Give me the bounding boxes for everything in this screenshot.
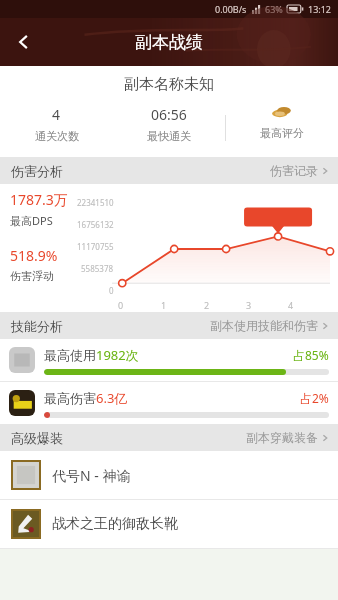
staticText: 0 [109,285,114,296]
staticText: 伤害记录 [270,163,318,178]
staticText: 副本使用技能和伤害 [210,318,318,333]
button[interactable]: 技能分析 [0,312,338,339]
button[interactable]: 06:56 [113,105,225,151]
button[interactable]: 代号N - 神谕 [0,451,338,499]
staticText: 6.3亿 [96,389,128,407]
staticText: 最高伤害 [44,390,96,406]
button[interactable]: Back [0,18,48,66]
staticText: 0 [118,299,124,311]
button[interactable]: 最高伤害 [0,382,338,424]
staticText: 最快通关 [147,129,191,143]
staticText: 占85% [293,347,329,363]
button[interactable]: 最高使用 [0,339,338,381]
staticText: 2 [204,299,210,311]
staticText: 占2% [300,390,329,406]
staticText: 06:56 [151,105,187,124]
button[interactable]: 4 [0,105,113,151]
staticText: 伤害浮动 [10,269,54,283]
staticText: 1982次 [96,346,139,364]
staticText: 1 [161,299,167,311]
staticText: 战术之王的御敌长靴 [52,515,178,533]
staticText: 最高使用 [44,347,96,363]
button[interactable]: 高级爆装 [0,424,338,451]
staticText: 11170755 [77,241,114,252]
staticText: 高级爆装 [11,430,63,446]
staticText: 副本名称未知 [0,75,338,94]
staticText: 63% [265,3,283,15]
button[interactable]: 伤害分析 [0,157,338,184]
staticText: 副本战绩 [135,32,203,53]
staticText: 22341510 [77,197,114,208]
staticText: 3 [246,299,252,311]
button[interactable]: 最高评分 [226,105,338,151]
staticText: 1787.3万 [10,190,68,209]
staticText: 518.9% [10,246,58,265]
staticText: 伤害分析 [11,163,63,179]
staticText: 副本穿戴装备 [246,430,318,445]
staticText: 5585378 [81,263,114,274]
staticText: 最高评分 [260,126,304,140]
staticText: 最高DPS [10,213,53,228]
staticText: 17873210 [233,196,279,210]
staticText: 13:12 [308,3,332,15]
staticText: 技能分析 [11,318,63,334]
staticText: 通关次数 [35,129,79,143]
staticText: 代号N - 神谕 [52,466,131,485]
button[interactable]: 战术之王的御敌长靴 [0,500,338,548]
staticText: 4 [52,105,61,124]
staticText: 4 [288,299,294,311]
staticText: 16756132 [77,219,114,230]
staticText: 0.00B/s [215,3,247,15]
